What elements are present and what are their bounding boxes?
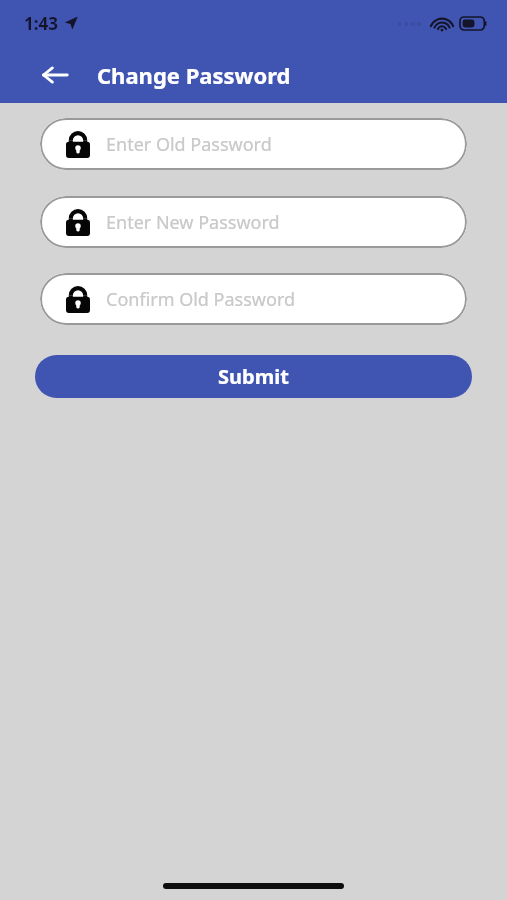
staticText: Confirm Old Password bbox=[106, 287, 296, 312]
staticText: Enter New Password bbox=[106, 210, 280, 235]
button[interactable]: Back bbox=[32, 52, 78, 98]
button[interactable]: Enter Old Password bbox=[40, 118, 467, 170]
button[interactable]: Enter New Password bbox=[40, 196, 467, 248]
button[interactable]: Confirm Old Password bbox=[40, 273, 467, 325]
button[interactable]: Submit bbox=[35, 355, 472, 398]
staticText: Submit bbox=[218, 363, 289, 390]
staticText: Change Password bbox=[97, 60, 291, 90]
staticText: Enter Old Password bbox=[106, 132, 272, 157]
staticText: 1:43 bbox=[24, 12, 58, 35]
